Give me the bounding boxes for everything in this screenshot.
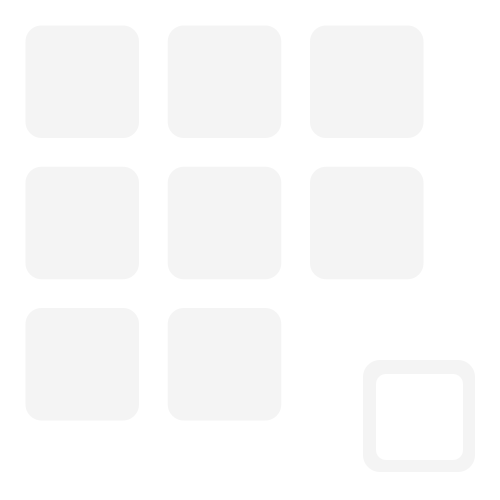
button[interactable]: Add tile [363, 360, 475, 472]
